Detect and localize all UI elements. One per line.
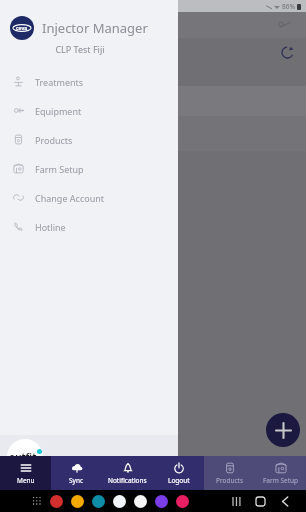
button[interactable]: Farm Setup: [255, 456, 306, 490]
button[interactable]: App: [92, 495, 105, 508]
staticText: Products: [35, 134, 73, 146]
staticText: Farm Setup: [263, 476, 299, 485]
staticText: Products: [216, 476, 244, 485]
button[interactable]: Products: [0, 125, 178, 154]
button[interactable]: Hotline: [0, 212, 178, 241]
button[interactable]: Change Account: [0, 183, 178, 212]
button[interactable]: Recents: [227, 497, 248, 506]
button[interactable]: Sync: [51, 456, 102, 490]
staticText: Farm Setup: [35, 163, 84, 175]
staticText: Injector Manager: [42, 19, 148, 37]
staticText: Testing-v11: [7, 495, 50, 506]
button[interactable]: Back: [273, 497, 298, 506]
button[interactable]: Menu: [0, 456, 51, 490]
button[interactable]: App: [71, 495, 84, 508]
staticText: Equipment: [35, 105, 82, 117]
button[interactable]: Logout: [153, 456, 204, 490]
button[interactable]: Equipment: [0, 96, 178, 125]
staticText: CLP Test Fiji: [0, 43, 160, 55]
button[interactable]: App: [176, 495, 189, 508]
staticText: Notifications: [108, 476, 147, 485]
staticText: Logout: [168, 476, 190, 485]
staticText: ceva: [16, 25, 28, 32]
button[interactable]: App: [50, 495, 63, 508]
button[interactable]: Farm Setup: [0, 154, 178, 183]
button[interactable]: App: [134, 495, 147, 508]
staticText: 86%: [282, 2, 295, 11]
button[interactable]: Treatments: [0, 67, 178, 96]
staticText: Legal: [145, 481, 166, 492]
staticText: Sync: [69, 476, 84, 485]
staticText: Menu: [17, 476, 35, 485]
staticText: outfit: [9, 450, 37, 464]
button[interactable]: Legal: [145, 481, 178, 492]
button[interactable]: Notifications: [102, 456, 153, 490]
button[interactable]: Add: [266, 413, 300, 447]
button[interactable]: App: [113, 495, 126, 508]
staticText: Version: 0.17: [7, 481, 56, 492]
staticText: Hotline: [35, 221, 66, 233]
button[interactable]: App: [155, 495, 168, 508]
staticText: Treatments: [35, 76, 84, 88]
staticText: Change Account: [35, 192, 105, 204]
button[interactable]: Home: [248, 497, 273, 506]
button[interactable]: Products: [204, 456, 255, 490]
